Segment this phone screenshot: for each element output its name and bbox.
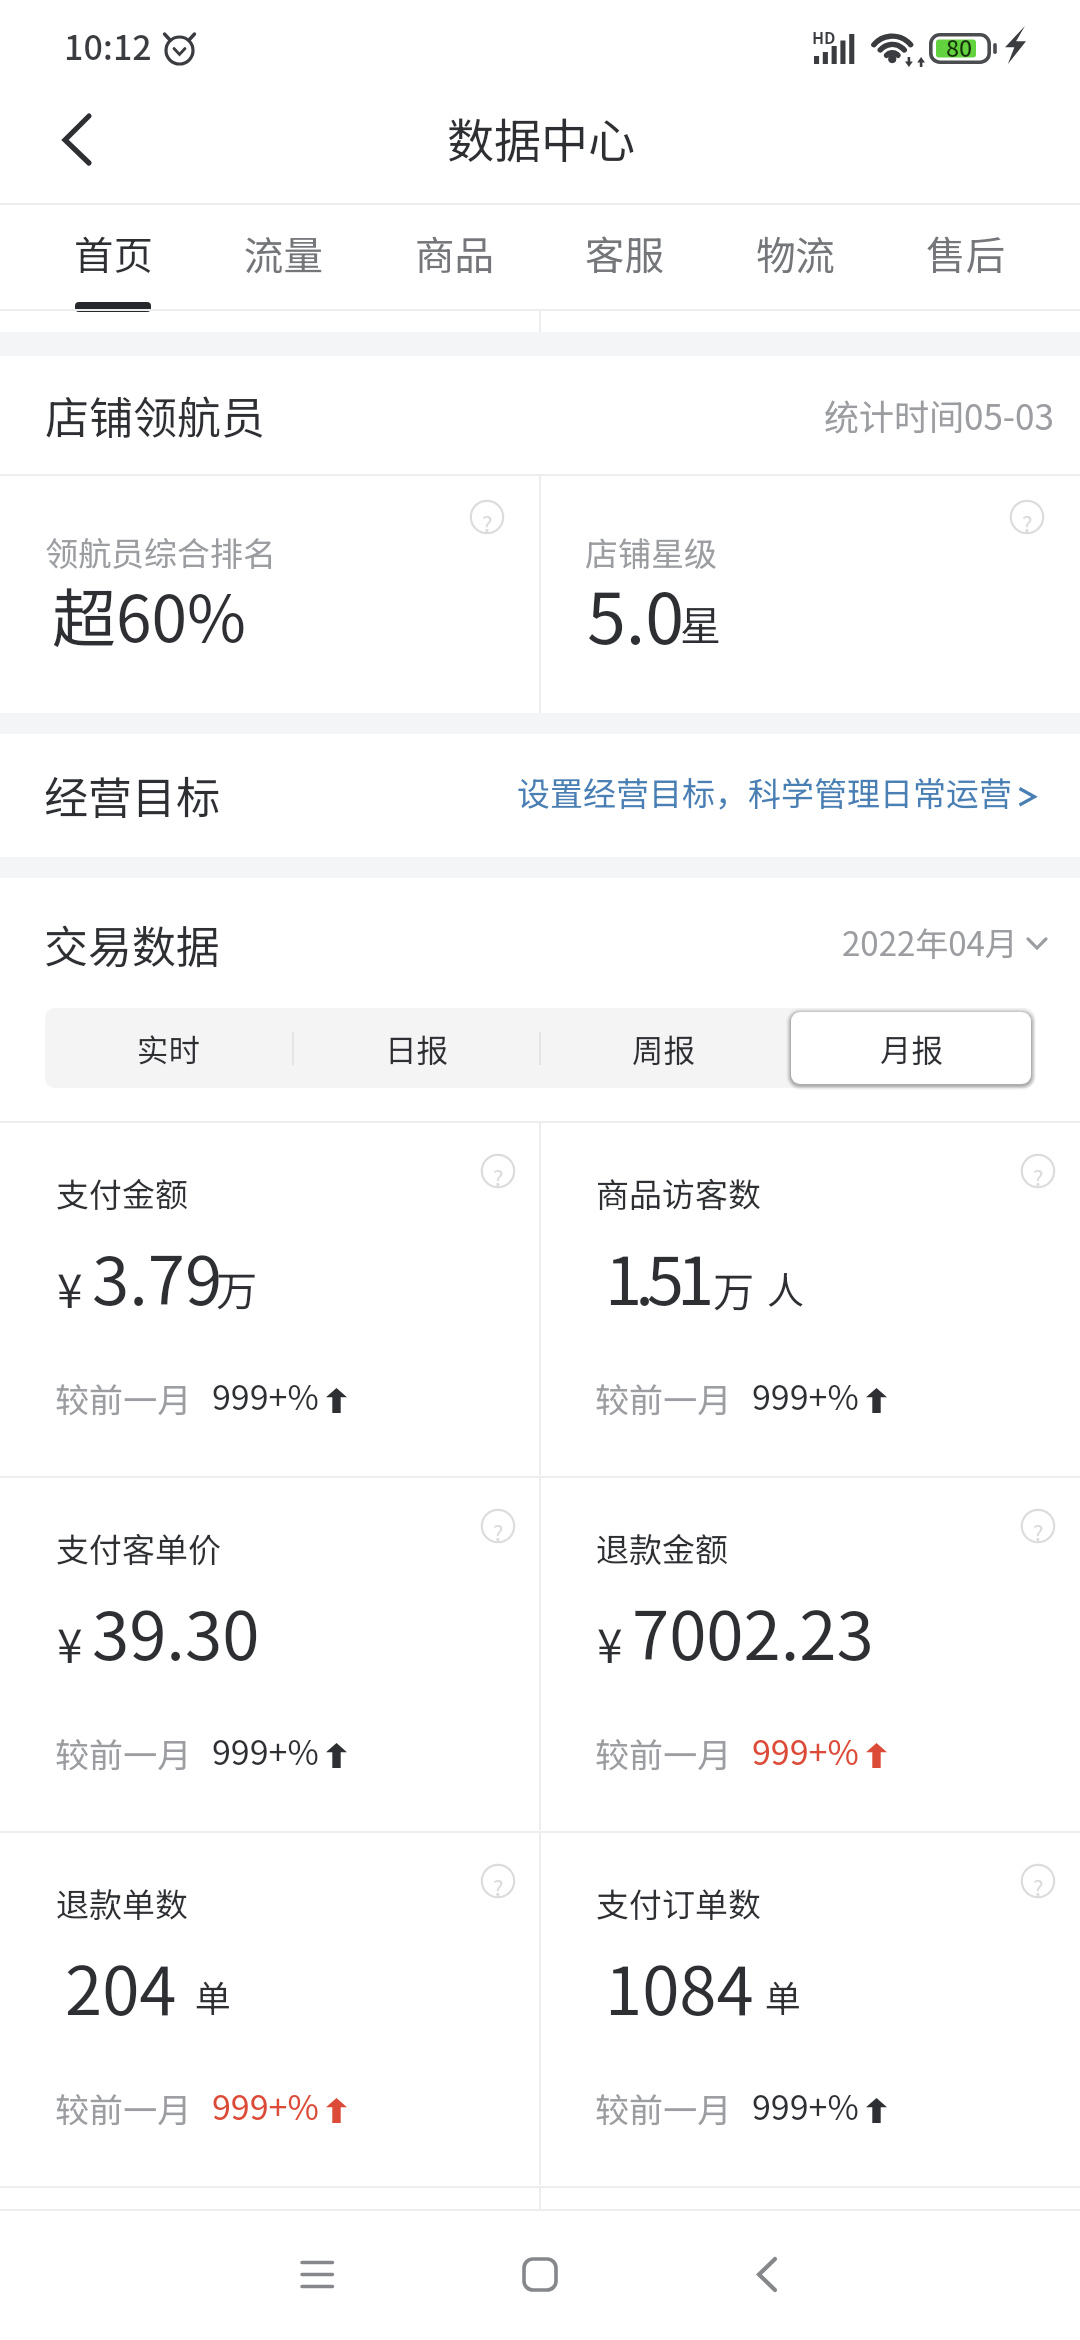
staticText: 日报 [385,1025,449,1071]
button[interactable]: Help [481,1154,515,1188]
staticText: 周报 [632,1025,696,1071]
button[interactable]: Back [707,2214,827,2334]
staticText: 3.79 [92,1227,223,1324]
staticText: 交易数据 [44,912,220,976]
button[interactable]: Back [20,86,130,194]
staticText: HD [812,25,836,48]
button[interactable] [293,1008,541,1088]
staticText: 1084 [605,1937,754,2034]
button[interactable]: Help [470,500,504,534]
staticText: ? [1033,1515,1044,1547]
button[interactable] [800,900,1065,980]
staticText: 经营目标 [44,763,220,827]
staticText: 999+% [752,1726,859,1775]
staticText: 设置经营目标，科学管理日常运营 [517,768,1012,816]
button[interactable] [788,1008,1036,1088]
staticText: 39.30 [92,1582,260,1679]
staticText: 退款单数 [56,1879,188,1927]
staticText: 80 [946,30,973,63]
staticText: 单 [195,1970,232,2022]
staticText: 店铺领航员 [45,383,265,447]
button[interactable]: Help [1021,1509,1055,1543]
staticText: ¥ [57,1610,83,1677]
staticText: 单 [765,1970,802,2022]
button[interactable] [540,476,1080,713]
staticText: 退款金额 [596,1524,728,1572]
staticText: ? [482,506,493,538]
staticText: 1.51 [605,1227,708,1324]
staticText: 物流 [756,224,835,281]
button[interactable]: Help [481,1864,515,1898]
staticText: 流量 [244,224,323,281]
button[interactable]: Help [1010,500,1044,534]
staticText: ? [1033,1870,1044,1902]
button[interactable] [0,734,1080,857]
staticText: 较前一月 [55,1729,191,1778]
staticText: 999+% [752,2081,859,2130]
button[interactable] [199,204,369,310]
button[interactable] [45,1008,293,1088]
staticText: 实时 [137,1025,201,1071]
staticText: 商品 [415,224,494,281]
staticText: 万 [713,1259,754,1318]
button[interactable]: Help [481,1509,515,1543]
staticText: 较前一月 [595,2084,731,2133]
staticText: 万 [216,1258,257,1317]
button[interactable] [0,1832,540,2185]
button[interactable] [0,476,539,713]
staticText: 超60% [52,568,246,661]
staticText: ? [493,1160,504,1192]
staticText: ? [493,1515,504,1547]
staticText: 204 [65,1937,177,2034]
staticText: 5.0 [587,563,685,664]
button[interactable]: Help [1021,1154,1055,1188]
staticText: ¥ [57,1255,83,1322]
button[interactable] [28,204,198,310]
staticText: 999+% [212,1726,319,1775]
staticText: 售后 [926,224,1005,281]
staticText: 客服 [585,224,664,281]
button[interactable] [540,1008,788,1088]
staticText: 店铺星级 [585,528,717,576]
staticText: 月报 [880,1025,944,1071]
staticText: ? [1033,1160,1044,1192]
staticText: 较前一月 [595,1729,731,1778]
button[interactable] [0,1477,540,1830]
staticText: 支付订单数 [596,1879,761,1927]
staticText: 10:12 [64,21,152,70]
button[interactable] [540,1477,1080,1830]
button[interactable]: Help [1021,1864,1055,1898]
staticText: 999+% [212,1371,319,1420]
button[interactable] [369,204,539,310]
staticText: 数据中心 [447,103,635,171]
staticText: 人 [767,1261,804,1315]
staticText: 2022年04月 [842,918,1018,966]
button[interactable] [0,356,1080,474]
staticText: 较前一月 [55,1374,191,1423]
staticText: 统计时间05-03 [824,389,1054,440]
staticText: 首页 [74,224,153,281]
staticText: 商品访客数 [596,1169,761,1217]
button[interactable] [711,204,881,310]
button[interactable] [540,1122,1080,1475]
staticText: 支付金额 [56,1169,188,1217]
staticText: ? [1022,506,1033,538]
staticText: 支付客单价 [56,1524,221,1572]
staticText: 较前一月 [595,1374,731,1423]
staticText: 999+% [212,2081,319,2130]
staticText: 999+% [752,1371,859,1420]
staticText: 星 [680,593,721,652]
button[interactable]: Menu [257,2214,377,2334]
button[interactable]: Home [480,2214,600,2334]
staticText: 7002.23 [632,1582,874,1679]
staticText: 领航员综合排名 [45,528,276,576]
button[interactable] [540,204,710,310]
staticText: ? [493,1870,504,1902]
button[interactable] [881,204,1051,310]
staticText: 较前一月 [55,2084,191,2133]
staticText: ¥ [597,1610,623,1677]
button[interactable] [0,1122,540,1475]
button[interactable] [540,1832,1080,2185]
